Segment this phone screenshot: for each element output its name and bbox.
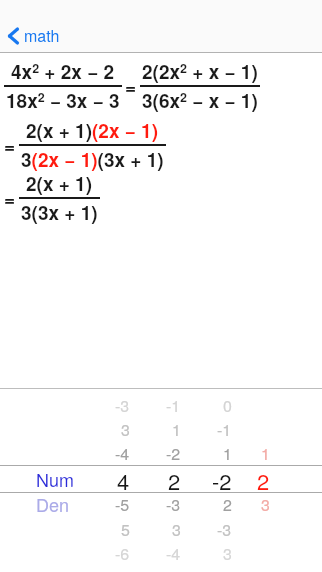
staticText: -5: [115, 493, 130, 516]
staticText: =: [125, 73, 137, 100]
staticText: 4x2 + 2x − 2: [11, 58, 115, 85]
staticText: -3: [115, 394, 130, 417]
staticText: 0: [223, 394, 232, 417]
staticText: -4: [166, 542, 181, 565]
staticText: 1: [172, 418, 181, 441]
staticText: -2: [166, 442, 181, 465]
button[interactable]: Num: [36, 466, 82, 490]
staticText: 18x2 − 3x − 3: [6, 87, 120, 114]
button[interactable]: Den: [36, 491, 82, 515]
staticText: 2: [257, 465, 270, 491]
staticText: -3: [217, 518, 232, 541]
staticText: =: [4, 185, 16, 212]
staticText: 2: [223, 493, 232, 516]
staticText: 3(3x + 1): [21, 199, 98, 226]
button[interactable]: math: [7, 24, 60, 47]
staticText: 5: [121, 518, 130, 541]
staticText: -1: [217, 418, 232, 441]
staticText: -6: [115, 542, 130, 565]
staticText: 1: [223, 442, 232, 465]
staticText: 4: [117, 465, 130, 491]
staticText: Num: [36, 466, 74, 490]
staticText: 3(2x − 1)(3x + 1): [21, 146, 164, 173]
staticText: 3(6x2 − x − 1): [142, 87, 258, 114]
staticText: 3: [172, 518, 181, 541]
staticText: 2(x + 1): [26, 170, 93, 197]
staticText: =: [4, 132, 16, 159]
staticText: 2(x + 1)(2x − 1): [26, 117, 159, 144]
staticText: -4: [115, 442, 130, 465]
staticText: 2: [168, 465, 181, 491]
staticText: -3: [166, 493, 181, 516]
staticText: math: [24, 24, 60, 47]
staticText: 3: [223, 542, 232, 565]
staticText: -1: [166, 394, 181, 417]
staticText: 3: [121, 418, 130, 441]
staticText: -2: [212, 465, 232, 491]
staticText: 1: [261, 442, 270, 465]
staticText: 2(2x2 + x − 1): [142, 58, 258, 85]
staticText: Den: [36, 491, 70, 515]
staticText: 3: [261, 493, 270, 516]
